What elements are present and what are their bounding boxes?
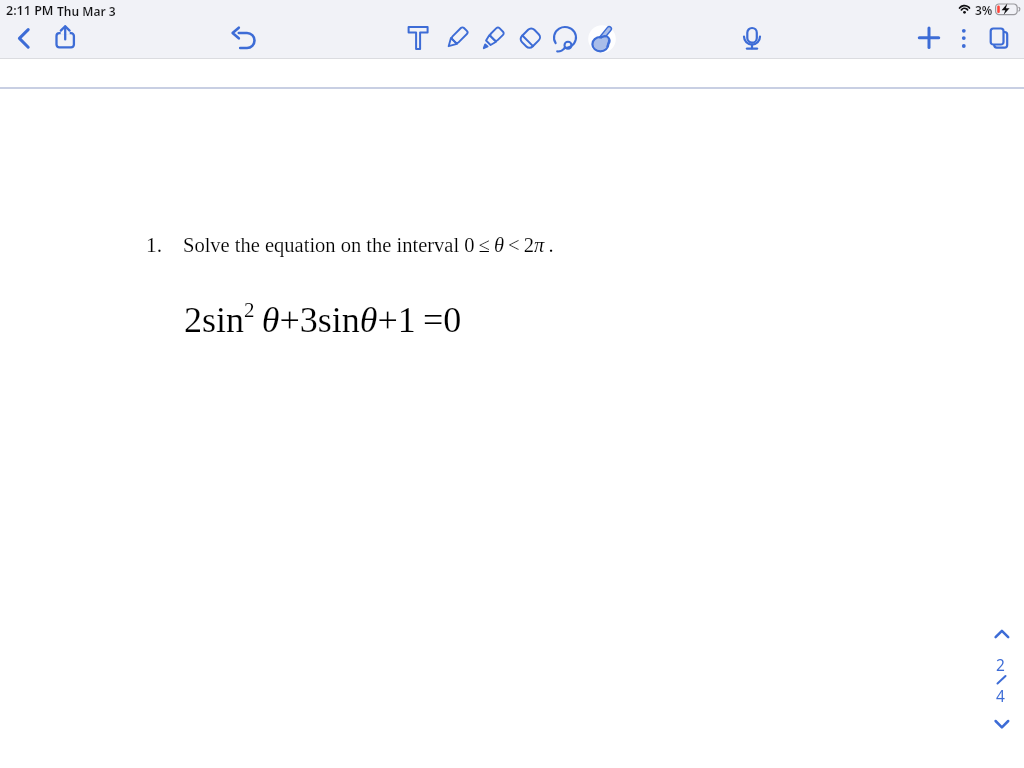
- staticText: 4: [996, 685, 1005, 706]
- staticText: 2: [996, 654, 1005, 675]
- button[interactable]: [228, 24, 256, 52]
- button[interactable]: 2: [986, 652, 1018, 708]
- button[interactable]: [988, 714, 1016, 734]
- staticText: 2:11 PM: [6, 2, 54, 19]
- staticText: 2sin2 θ+3sinθ+1 =0: [184, 298, 462, 339]
- button[interactable]: [445, 25, 469, 51]
- button[interactable]: [52, 24, 78, 50]
- button[interactable]: [988, 25, 1012, 51]
- button[interactable]: [407, 25, 429, 51]
- button[interactable]: [14, 26, 34, 50]
- button[interactable]: [518, 25, 543, 51]
- staticText: Solve the equation on the interval 0 ≤ θ…: [183, 234, 554, 257]
- staticText: Thu Mar 3: [57, 3, 116, 19]
- button[interactable]: [955, 26, 973, 50]
- staticText: 3%: [975, 2, 993, 18]
- button[interactable]: [917, 26, 941, 50]
- button[interactable]: [552, 24, 578, 52]
- button[interactable]: [740, 25, 764, 52]
- button[interactable]: [988, 624, 1016, 644]
- button[interactable]: [481, 25, 506, 51]
- button[interactable]: [588, 24, 616, 54]
- staticText: 1.: [146, 233, 163, 257]
